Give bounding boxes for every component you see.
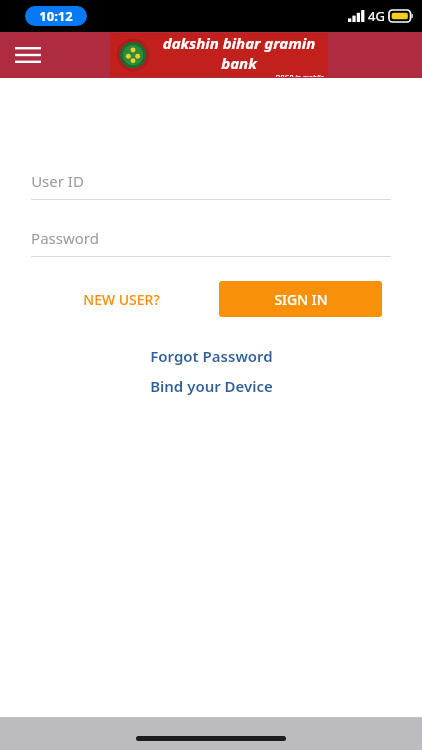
staticText: ....DBGB in mobile [268,73,324,77]
staticText: User ID [31,171,84,191]
staticText: Bind your Device [150,376,273,396]
button[interactable]: Forgot Password [0,341,422,371]
button[interactable]: NEW USER? [37,281,205,317]
staticText: SIGN IN [274,290,328,309]
button[interactable]: Dakshin Bihar Gramin Bank [110,33,328,77]
button[interactable]: User ID [31,168,391,200]
button[interactable]: Bind your Device [0,371,422,401]
staticText: Forgot Password [150,346,273,366]
staticText: dakshin bihar gramin bank [154,33,324,73]
staticText: Password [31,228,99,248]
button[interactable]: SIGN IN [219,281,382,317]
button[interactable]: Password [31,225,391,257]
staticText: 10:12 [39,7,73,25]
staticText: 4G [368,7,385,25]
staticText: NEW USER? [83,290,160,309]
button[interactable]: Open navigation menu [10,37,46,73]
